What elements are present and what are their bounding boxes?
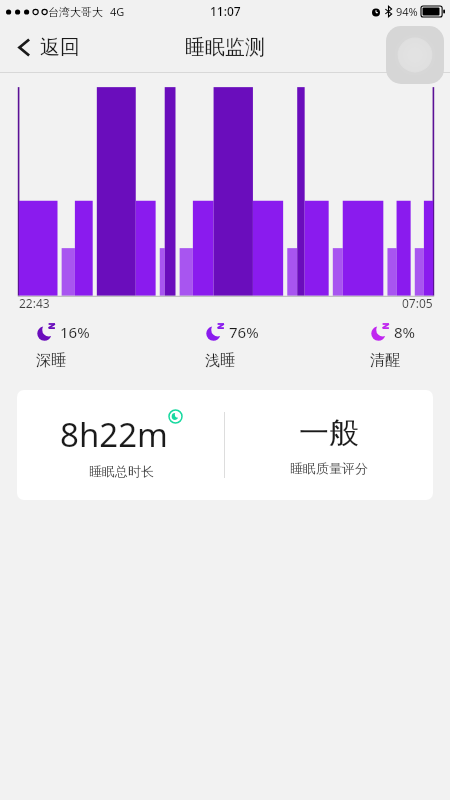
- staticText: 8%: [394, 322, 416, 342]
- staticText: 94%: [396, 4, 418, 19]
- button[interactable]: 16%: [36, 321, 90, 370]
- staticText: 16%: [60, 322, 90, 342]
- staticText: 深睡: [36, 351, 66, 370]
- staticText: 睡眠质量评分: [290, 460, 368, 476]
- staticText: 一般: [299, 414, 359, 452]
- staticText: 睡眠监测: [185, 35, 265, 60]
- staticText: 76%: [229, 322, 259, 342]
- button[interactable]: AssistiveTouch: [386, 26, 444, 84]
- button[interactable]: 8%: [370, 321, 416, 370]
- staticText: 22:43: [19, 295, 50, 311]
- staticText: 8h22m: [60, 412, 168, 457]
- staticText: 浅睡: [205, 351, 235, 370]
- staticText: 4G: [110, 4, 125, 19]
- button[interactable]: 8h22m: [17, 390, 433, 500]
- staticText: 11:07: [210, 3, 241, 19]
- staticText: 台湾大哥大: [48, 5, 103, 19]
- button[interactable]: 返回: [10, 29, 84, 66]
- staticText: 返回: [40, 35, 80, 60]
- staticText: 睡眠总时长: [89, 463, 154, 479]
- staticText: 07:05: [402, 295, 433, 311]
- button[interactable]: 76%: [205, 321, 259, 370]
- staticText: 清醒: [370, 351, 400, 370]
